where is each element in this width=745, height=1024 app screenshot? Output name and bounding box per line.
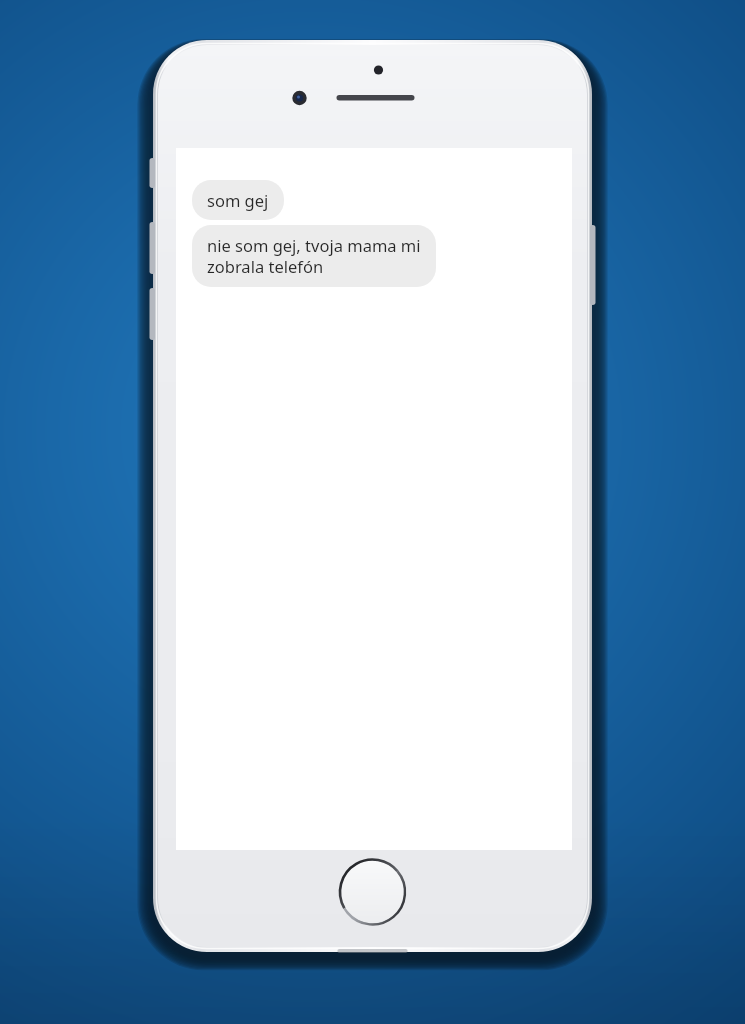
staticText: som gej [207,189,269,211]
staticText: nie som gej, tvoja mama mi zobrala telef… [207,234,421,278]
button[interactable]: som gej [192,180,284,220]
button[interactable]: nie som gej, tvoja mama mi zobrala telef… [192,225,436,287]
